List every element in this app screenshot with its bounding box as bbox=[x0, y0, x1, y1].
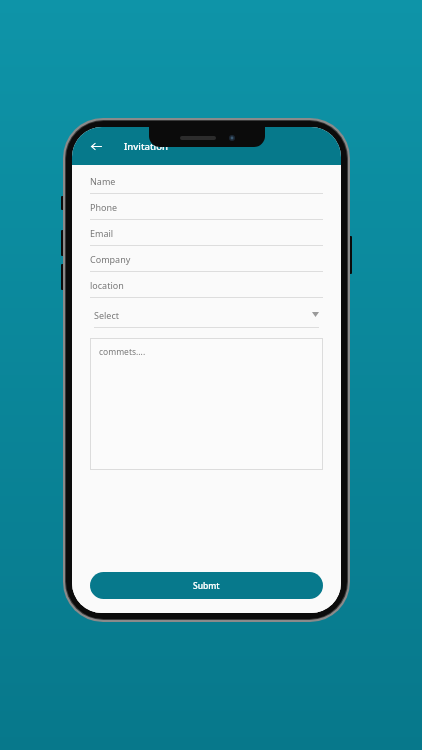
staticText: Company bbox=[90, 253, 131, 265]
staticText: Submt bbox=[193, 580, 220, 592]
staticText: Email bbox=[90, 227, 114, 239]
button[interactable]: Email bbox=[90, 220, 323, 246]
button[interactable]: Submt bbox=[90, 572, 323, 599]
staticText: Select bbox=[94, 309, 119, 321]
staticText: Name bbox=[90, 175, 116, 187]
staticText: location bbox=[90, 279, 124, 291]
button[interactable]: Back bbox=[85, 135, 107, 157]
button[interactable]: Company bbox=[90, 246, 323, 272]
button[interactable]: commets.... bbox=[90, 338, 323, 470]
button[interactable]: Name bbox=[90, 168, 323, 194]
staticText: Invitation bbox=[124, 140, 168, 153]
staticText: Phone bbox=[90, 201, 118, 213]
button[interactable]: Phone bbox=[90, 194, 323, 220]
button[interactable]: Select bbox=[90, 298, 323, 328]
staticText: commets.... bbox=[99, 346, 146, 358]
button[interactable]: location bbox=[90, 272, 323, 298]
